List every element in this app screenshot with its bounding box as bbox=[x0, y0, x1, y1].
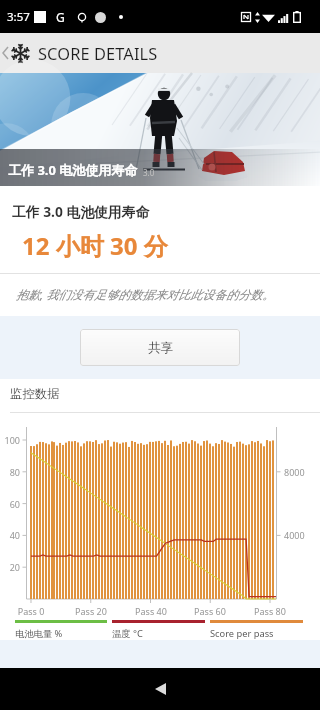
staticText: 工作 3.0 电池使用寿命 bbox=[8, 161, 138, 179]
staticText: 4000 bbox=[284, 529, 305, 541]
staticText: 100 bbox=[0, 434, 20, 446]
staticText: 8000 bbox=[284, 466, 305, 478]
staticText: 抱歉, 我们没有足够的数据来对比此设备的分数。 bbox=[16, 286, 275, 302]
staticText: 电池电量 % bbox=[15, 627, 63, 640]
staticText: Pass 20 bbox=[71, 605, 111, 617]
staticText: 3:57 bbox=[7, 9, 30, 25]
staticText: 监控数据 bbox=[10, 386, 60, 402]
button[interactable]: Back bbox=[140, 669, 180, 709]
staticText: 温度 °C bbox=[112, 627, 143, 640]
button[interactable]: 共享 bbox=[80, 329, 240, 366]
staticText: Pass 80 bbox=[250, 605, 290, 617]
staticText: Pass 40 bbox=[131, 605, 171, 617]
staticText: SCORE DETAILS bbox=[38, 42, 158, 64]
staticText: 60 bbox=[0, 498, 20, 510]
staticText: 共享 bbox=[148, 340, 173, 356]
staticText: 3.0 bbox=[143, 167, 155, 178]
staticText: Pass 60 bbox=[190, 605, 230, 617]
staticText: 12 小时 30 分 bbox=[22, 229, 168, 262]
staticText: 工作 3.0 电池使用寿命 bbox=[12, 202, 150, 221]
staticText: 40 bbox=[0, 529, 20, 541]
staticText: G bbox=[56, 9, 65, 25]
button[interactable]: Back bbox=[0, 33, 11, 73]
staticText: Pass 0 bbox=[11, 605, 51, 617]
staticText: 20 bbox=[0, 561, 20, 573]
staticText: Score per pass bbox=[210, 627, 274, 640]
staticText: 80 bbox=[0, 466, 20, 478]
